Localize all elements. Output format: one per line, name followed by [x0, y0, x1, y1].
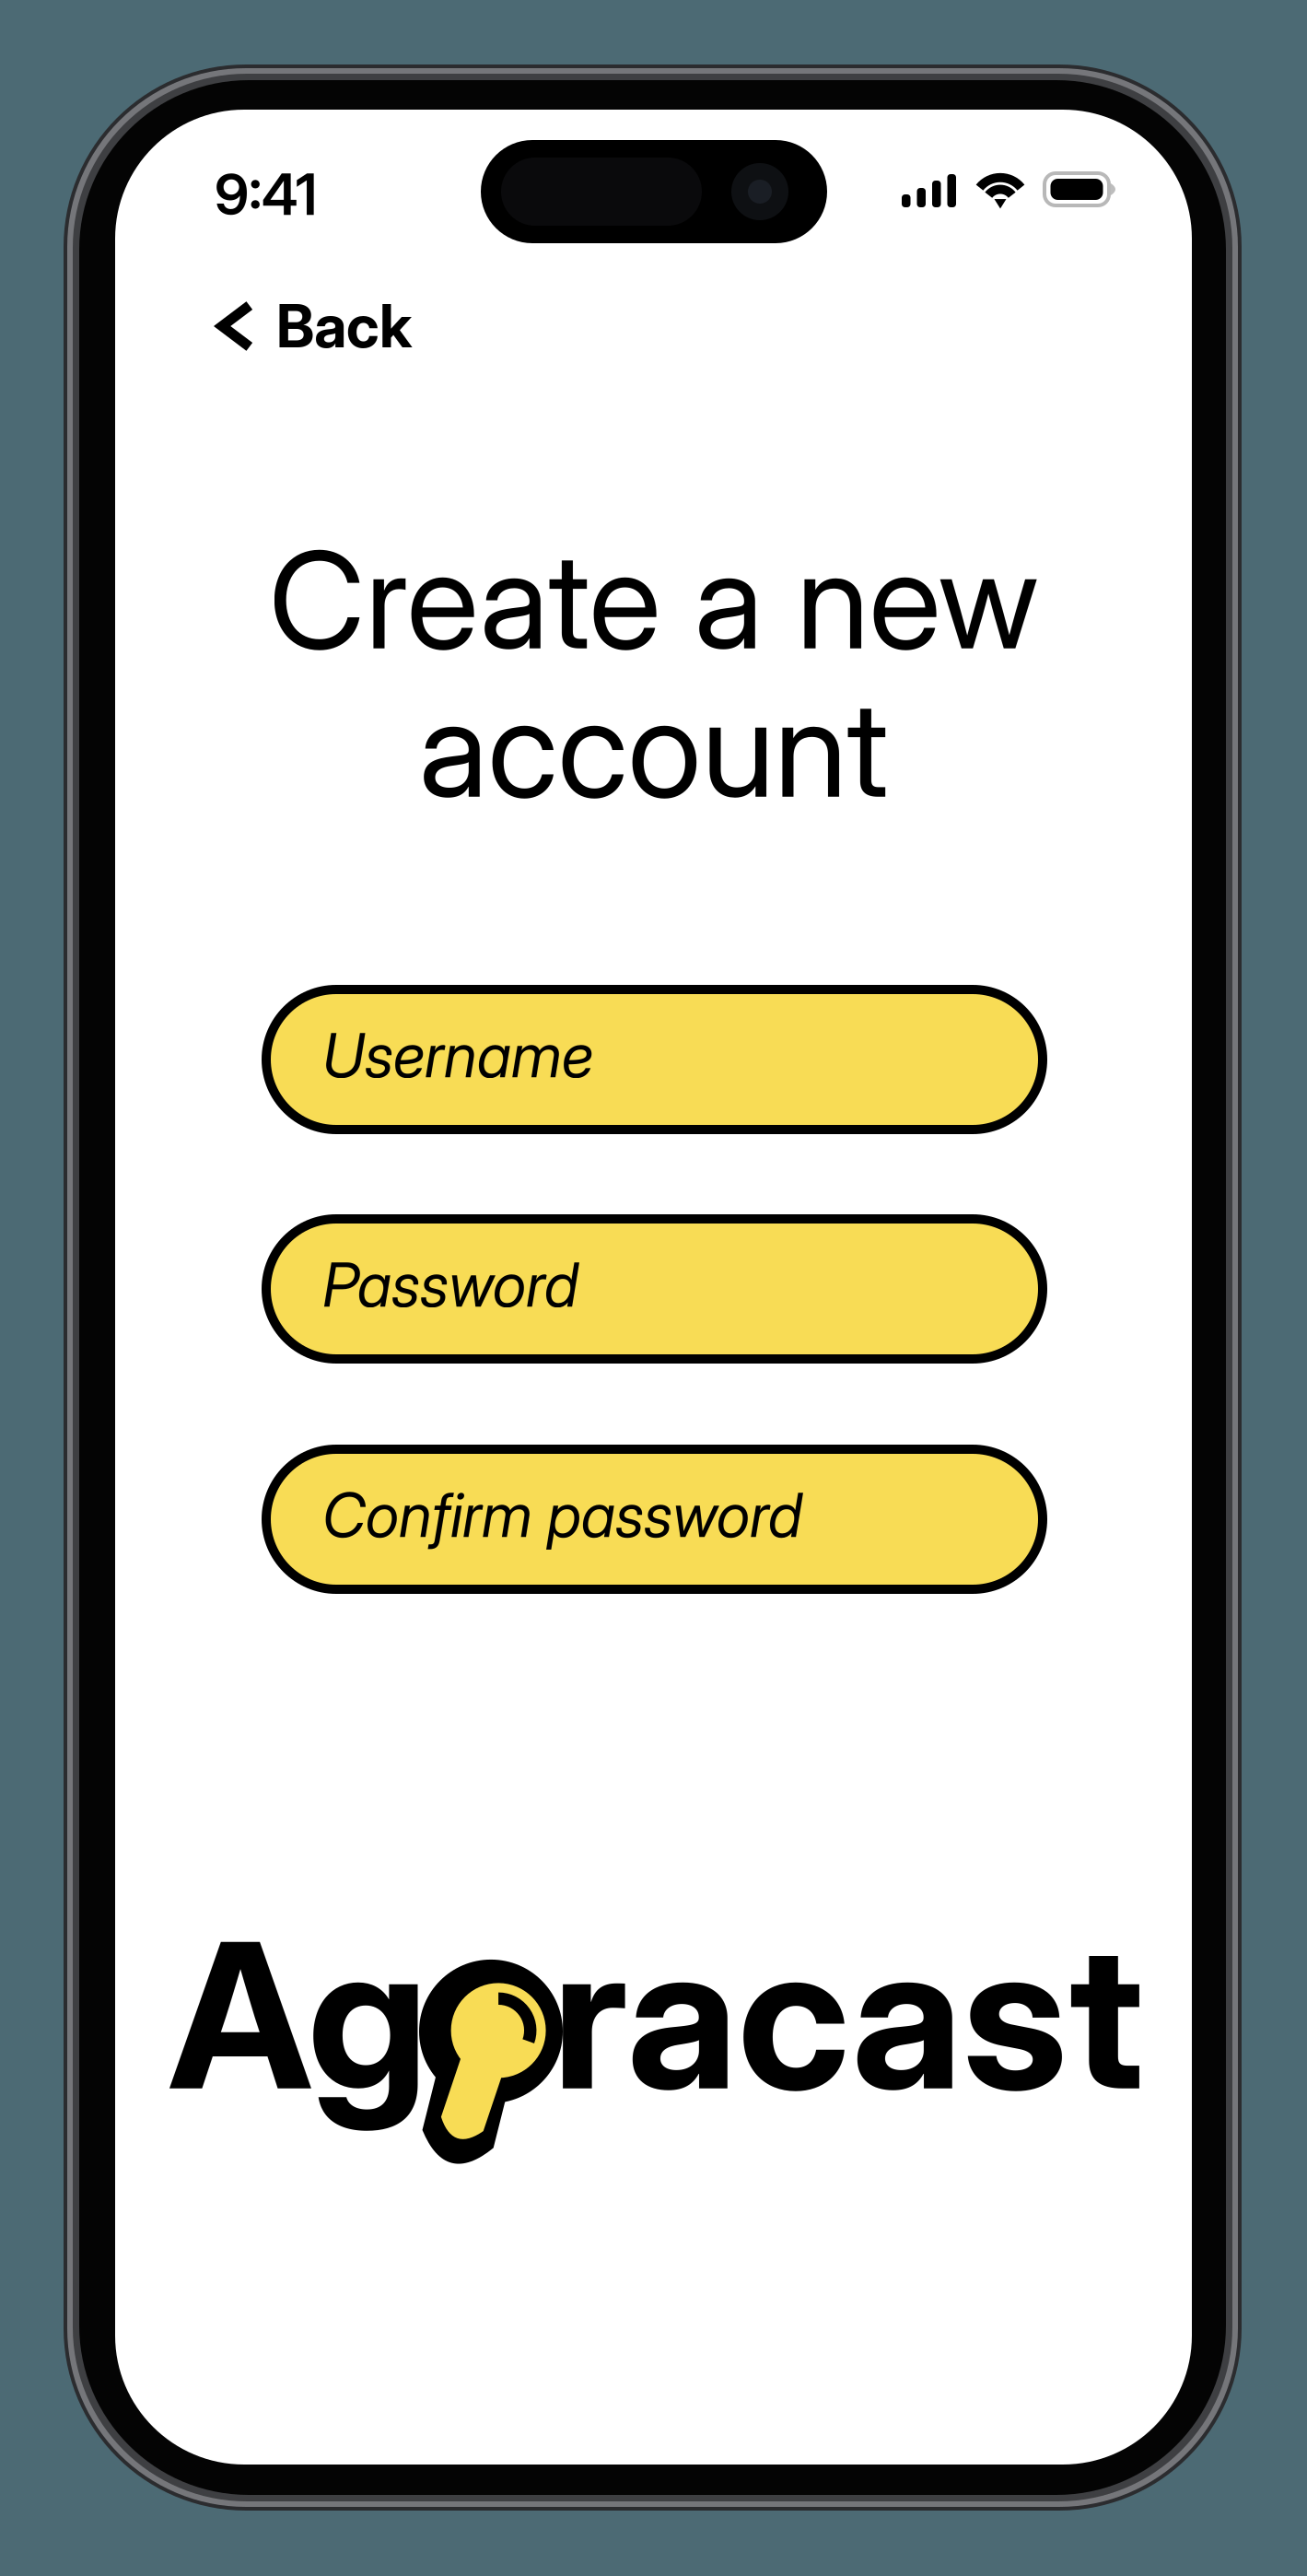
staticText: Username: [322, 1019, 593, 1092]
staticText: Create a new: [268, 519, 1039, 681]
staticText: Confirm password: [322, 1479, 802, 1551]
button[interactable]: Confirm password: [262, 1445, 1047, 1594]
staticText: Ag: [169, 1893, 428, 2137]
button[interactable]: Username: [262, 985, 1047, 1134]
staticText: account: [419, 667, 888, 829]
staticText: 9:41: [215, 160, 317, 229]
staticText: racast: [553, 1893, 1144, 2137]
staticText: Back: [276, 290, 412, 362]
staticText: Password: [322, 1248, 578, 1321]
button[interactable]: Back: [196, 278, 449, 374]
button[interactable]: Password: [262, 1214, 1047, 1364]
